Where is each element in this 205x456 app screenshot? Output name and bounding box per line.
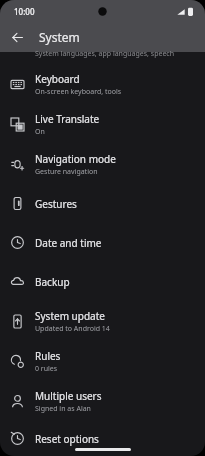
staticText: Keyboard	[35, 72, 80, 86]
staticText: System languages, app languages, speech	[35, 49, 175, 59]
button[interactable]: System update	[0, 301, 205, 341]
staticText: Updated to Android 14	[35, 324, 110, 334]
staticText: Live Translate	[35, 112, 100, 126]
staticText: Date and time	[35, 236, 102, 250]
button[interactable]: Navigation mode	[0, 144, 205, 184]
button[interactable]: Rules	[0, 341, 205, 381]
staticText: System update	[35, 309, 105, 323]
staticText: Backup	[35, 275, 70, 289]
staticText: 0 rules	[35, 364, 58, 374]
staticText: Rules	[35, 349, 61, 363]
staticText: On	[35, 127, 45, 137]
staticText: Reset options	[35, 432, 99, 446]
staticText: On-screen keyboard, tools	[35, 87, 122, 97]
button[interactable]: Back	[6, 26, 29, 49]
button[interactable]: Live Translate	[0, 104, 205, 144]
button[interactable]: Multiple users	[0, 381, 205, 421]
staticText: System	[39, 29, 80, 45]
staticText: Gesture navigation	[35, 167, 98, 177]
staticText: 10:00	[14, 6, 35, 17]
staticText: Signed in as Alan	[35, 404, 91, 414]
button[interactable]: Backup	[0, 262, 205, 301]
button[interactable]: Keyboard	[0, 64, 205, 104]
staticText: Multiple users	[35, 389, 102, 403]
staticText: Gestures	[35, 197, 77, 211]
button[interactable]: Reset options	[0, 421, 205, 456]
button[interactable]: Date and time	[0, 223, 205, 262]
staticText: Navigation mode	[35, 152, 116, 166]
button[interactable]: Gestures	[0, 184, 205, 223]
